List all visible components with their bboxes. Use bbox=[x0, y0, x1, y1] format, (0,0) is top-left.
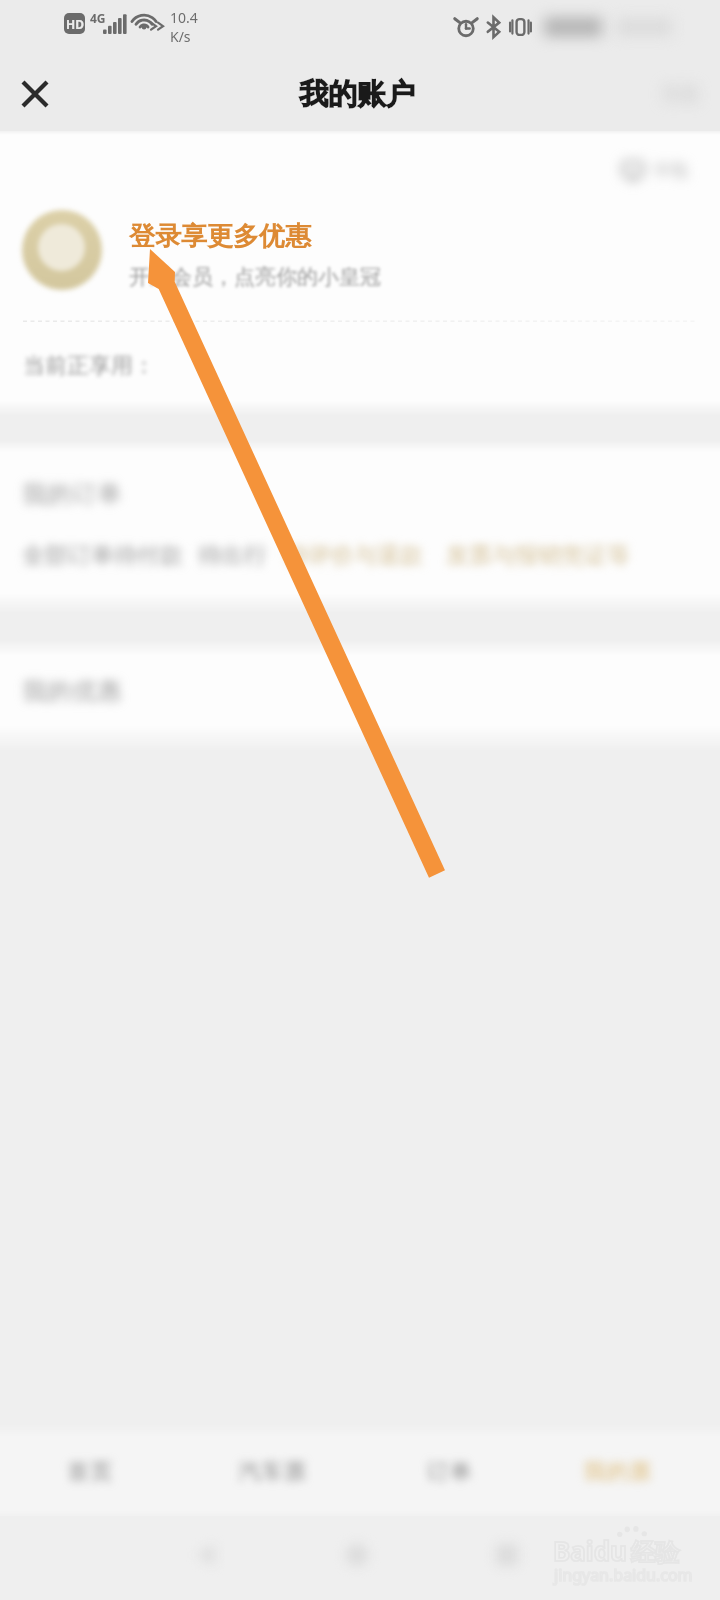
staticText: 汽车票 bbox=[238, 1458, 307, 1486]
staticText: 登录享更多优惠 bbox=[129, 220, 311, 253]
staticText: Baidu bbox=[553, 1533, 627, 1568]
staticText: 首页 bbox=[67, 1458, 113, 1486]
staticText: 开通会员，点亮你的小皇冠 bbox=[129, 264, 381, 290]
staticText: 4G bbox=[90, 10, 106, 26]
staticText: 我的优惠 bbox=[22, 676, 122, 706]
staticText: 卡包 bbox=[652, 159, 688, 182]
staticText: 经验 bbox=[631, 1538, 679, 1568]
staticText: K/s bbox=[170, 27, 191, 46]
button[interactable]: 首页 bbox=[0, 1424, 180, 1520]
staticText: 我的账户 bbox=[299, 76, 415, 113]
staticText: 待出行 bbox=[198, 541, 267, 570]
staticText: 我的票 bbox=[583, 1458, 652, 1486]
staticText: jingyan.baidu.com bbox=[554, 1564, 693, 1586]
button[interactable]: 我的票 bbox=[540, 1424, 720, 1520]
button[interactable]: 汽车票 bbox=[180, 1424, 360, 1520]
button[interactable]: 订单 bbox=[360, 1424, 540, 1520]
staticText: HD bbox=[66, 16, 84, 32]
staticText: 我的订单 bbox=[22, 479, 122, 509]
staticText: 待评价与退款 bbox=[285, 541, 423, 570]
button[interactable]: Home bbox=[345, 1543, 369, 1567]
button[interactable]: Recents bbox=[495, 1543, 519, 1567]
staticText: 全部订单待付款 bbox=[22, 541, 183, 570]
staticText: 订单 bbox=[426, 1458, 472, 1486]
staticText: 发票与报销凭证等 bbox=[446, 541, 630, 570]
staticText: 当前正享用： bbox=[23, 352, 155, 380]
staticText: 10.4 bbox=[170, 8, 198, 27]
button[interactable]: Close bbox=[6, 65, 64, 123]
